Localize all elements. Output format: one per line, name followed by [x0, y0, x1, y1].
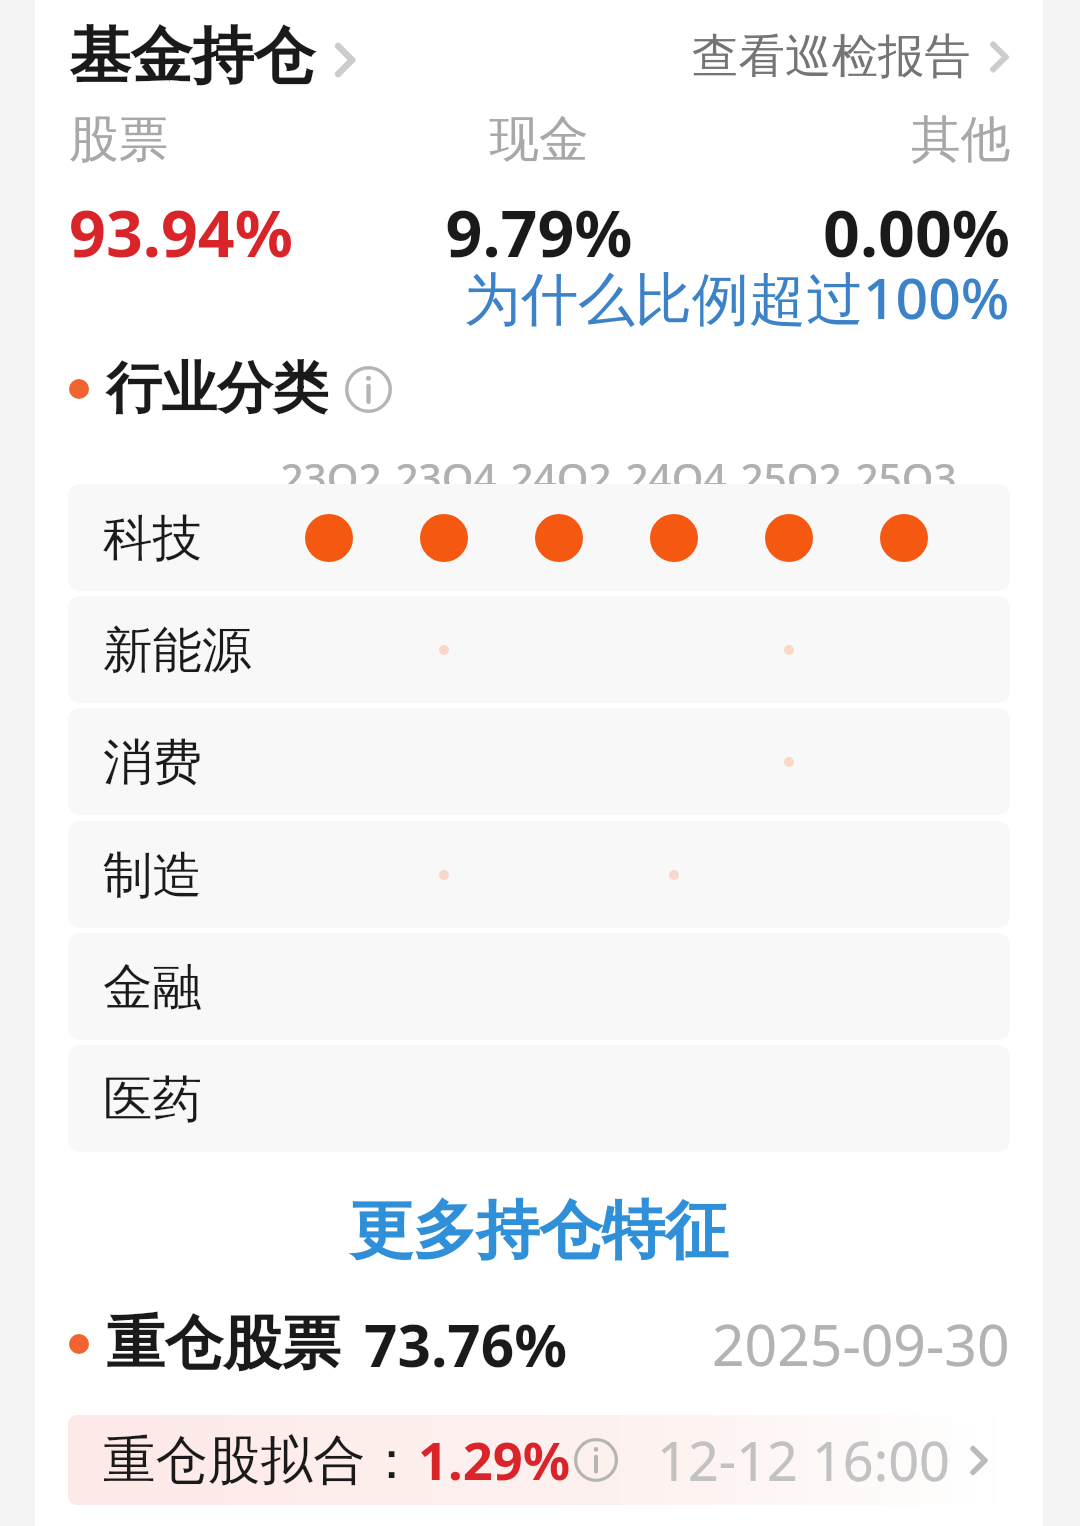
staticText: 25Q2	[740, 450, 842, 492]
staticText: 其他	[696, 108, 1010, 170]
button[interactable]: 金融	[68, 933, 1010, 1040]
staticText: 0.00%	[696, 188, 1010, 276]
staticText: 23Q4	[395, 450, 497, 492]
staticText: 更多持仓特征	[350, 1191, 728, 1270]
staticText: 制造	[103, 844, 202, 906]
staticText: 25Q3	[855, 450, 957, 492]
staticText: 科技	[103, 507, 202, 569]
staticText: 金融	[103, 956, 202, 1018]
staticText: 2025-09-30	[712, 1305, 1010, 1383]
button[interactable]: 行业分类	[69, 354, 392, 424]
staticText: 93.94%	[69, 188, 382, 276]
button[interactable]: 医药	[68, 1045, 1010, 1152]
staticText: 重仓股票	[106, 1307, 340, 1381]
button[interactable]: 新能源	[68, 596, 1010, 703]
staticText: 1.29%	[418, 1424, 571, 1496]
staticText: 9.79%	[382, 188, 696, 276]
staticText: 为什么比例超过100%	[464, 258, 1010, 336]
staticText: 24Q2	[510, 450, 612, 492]
staticText: 现金	[382, 108, 696, 170]
button[interactable]: 基金持仓	[69, 18, 357, 95]
button[interactable]: 科技	[68, 484, 1010, 591]
button[interactable]: 更多持仓特征	[350, 1191, 728, 1270]
button[interactable]: 查看巡检报告	[692, 27, 1010, 86]
button[interactable]: 重仓股拟合：	[68, 1415, 1010, 1505]
staticText: 12-12 16:00	[657, 1423, 951, 1497]
button[interactable]: 制造	[68, 821, 1010, 928]
staticText: 股票	[69, 108, 382, 170]
staticText: 73.76%	[364, 1304, 568, 1384]
button[interactable]: 消费	[68, 708, 1010, 815]
staticText: 查看巡检报告	[692, 27, 971, 86]
staticText: 24Q4	[625, 450, 727, 492]
staticText: 行业分类	[106, 354, 328, 424]
staticText: 重仓股拟合：	[103, 1427, 418, 1493]
staticText: 23Q2	[280, 450, 382, 492]
other: 拟合说明	[574, 1438, 618, 1482]
staticText: 消费	[103, 731, 202, 793]
other: 行业分类说明	[345, 366, 392, 413]
button[interactable]: 为什么比例超过100%	[464, 258, 1010, 336]
button[interactable]: 重仓股票	[35, 1284, 1043, 1404]
staticText: 基金持仓	[69, 18, 315, 95]
staticText: 新能源	[103, 619, 252, 681]
staticText: 医药	[103, 1068, 202, 1130]
